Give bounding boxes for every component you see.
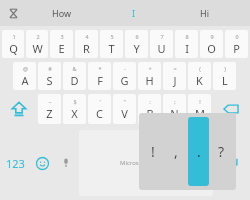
staticText: 7 (160, 33, 164, 40)
button[interactable]: ? (211, 117, 232, 186)
staticText: @ (23, 65, 28, 72)
staticText: J (173, 73, 177, 88)
staticText: L (222, 73, 228, 88)
staticText: - (124, 65, 126, 72)
button[interactable]: Enter (214, 128, 249, 198)
staticText: 2 (36, 33, 40, 40)
staticText: # (48, 65, 52, 72)
button[interactable]: 1 (2, 30, 24, 58)
button[interactable]: 0 (225, 30, 248, 58)
button[interactable]: 5 (100, 30, 123, 58)
button[interactable]: Shift (1, 92, 37, 126)
staticText: : (149, 98, 151, 105)
staticText: 9 (210, 33, 214, 40)
button[interactable]: ! (188, 94, 211, 124)
staticText: 5 (110, 33, 114, 40)
button[interactable]: Hi (169, 0, 240, 26)
staticText: Y (133, 41, 140, 56)
staticText: I (132, 7, 136, 19)
button[interactable]: 123 (1, 128, 30, 198)
button[interactable]: 8 (175, 30, 198, 58)
staticText: 123 (6, 156, 25, 171)
button[interactable]: . (188, 117, 209, 186)
button[interactable]: 4 (75, 30, 98, 58)
staticText: Hi (200, 7, 209, 19)
staticText: G (120, 73, 129, 88)
staticText: A (21, 73, 29, 88)
button[interactable]: Close suggestions (0, 0, 26, 26)
staticText: 1 (12, 33, 16, 40)
button[interactable]: ' (88, 94, 111, 124)
staticText: ! (199, 98, 201, 105)
button[interactable]: Emoji (30, 128, 54, 198)
staticText: , (174, 142, 178, 161)
staticText: How (52, 7, 72, 19)
staticText: + (148, 65, 152, 72)
staticText: 6 (135, 33, 139, 40)
staticText: * (98, 65, 102, 72)
staticText: X (71, 106, 78, 121)
button[interactable]: 9 (200, 30, 223, 58)
staticText: B (146, 106, 154, 121)
button[interactable]: + (138, 62, 161, 90)
button[interactable]: $ (63, 94, 86, 124)
button[interactable]: @ (13, 62, 36, 90)
button[interactable]: ~ (38, 94, 61, 124)
button[interactable]: 2 (26, 30, 48, 58)
staticText: Microsoft SwiftKey (120, 159, 172, 167)
staticText: F (97, 73, 103, 88)
button[interactable]: Microsoft SwiftKey (79, 130, 213, 196)
staticText: R (83, 41, 90, 56)
button[interactable]: Voice input (54, 128, 78, 198)
button[interactable]: ; (163, 94, 186, 124)
staticText: & (72, 65, 77, 72)
staticText: M (195, 106, 205, 121)
button[interactable]: : (138, 94, 161, 124)
staticText: E (58, 41, 65, 56)
button[interactable]: Backspace (212, 92, 249, 126)
staticText: 0 (235, 33, 239, 40)
staticText: P (233, 41, 240, 56)
staticText: 3 (60, 33, 64, 40)
staticText: I (185, 41, 189, 56)
staticText: U (157, 41, 166, 56)
button[interactable]: ! (143, 117, 163, 186)
staticText: 8 (185, 33, 189, 40)
staticText: D (70, 73, 79, 88)
staticText: ) (224, 65, 226, 72)
button[interactable]: # (38, 62, 61, 90)
button[interactable]: 6 (125, 30, 148, 58)
staticText: O (207, 41, 216, 56)
button[interactable]: 3 (50, 30, 73, 58)
staticText: S (46, 73, 53, 88)
staticText: ~ (48, 98, 52, 105)
staticText: ? (218, 142, 225, 161)
staticText: N (170, 106, 179, 121)
staticText: C (96, 106, 103, 121)
button[interactable]: , (165, 117, 186, 186)
button[interactable]: & (63, 62, 86, 90)
staticText: " (123, 98, 126, 105)
button[interactable]: = (163, 62, 186, 90)
staticText: H (145, 73, 154, 88)
staticText: T (108, 41, 115, 56)
button[interactable]: ) (213, 62, 236, 90)
button[interactable]: ( (188, 62, 211, 90)
button[interactable]: - (113, 62, 136, 90)
staticText: K (196, 73, 203, 88)
staticText: Z (46, 106, 53, 121)
staticText: V (121, 106, 128, 121)
staticText: ' (99, 98, 101, 105)
button[interactable]: " (113, 94, 136, 124)
staticText: = (173, 65, 177, 72)
staticText: Q (9, 41, 18, 56)
staticText: ! (151, 142, 155, 161)
staticText: ; (174, 98, 176, 105)
staticText: . (197, 142, 201, 161)
staticText: 4 (85, 33, 89, 40)
button[interactable]: How (26, 0, 98, 26)
staticText: W (32, 41, 43, 56)
button[interactable]: I (98, 0, 169, 26)
button[interactable]: 7 (150, 30, 173, 58)
button[interactable]: * (88, 62, 111, 90)
